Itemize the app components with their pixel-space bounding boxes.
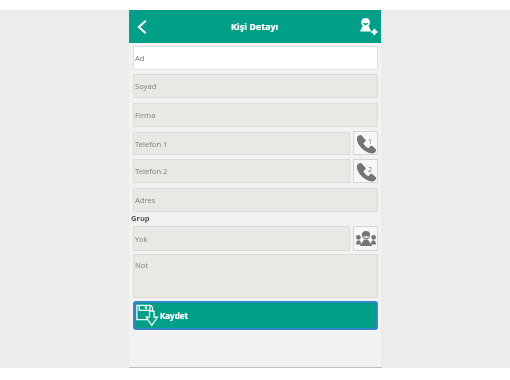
button[interactable]: Add contact — [353, 10, 383, 43]
button[interactable]: Kaydet — [135, 303, 376, 328]
staticText: Ad — [135, 53, 145, 63]
button[interactable]: Yok — [133, 226, 350, 251]
staticText: Firma — [135, 110, 156, 120]
button[interactable]: Back — [128, 10, 156, 43]
button[interactable]: Soyad — [133, 74, 378, 98]
staticText: 2 — [368, 165, 373, 175]
staticText: Telefon 2 — [135, 166, 168, 176]
staticText: 1 — [368, 137, 373, 147]
button[interactable]: Adres — [133, 188, 378, 212]
button[interactable]: Firma — [133, 103, 378, 127]
staticText: Yok — [135, 234, 148, 244]
staticText: Adres — [135, 195, 156, 205]
button[interactable]: group — [353, 226, 378, 251]
button[interactable]: Ad — [133, 46, 378, 70]
staticText: Grup — [131, 213, 150, 223]
button[interactable]: Telefon 2 — [133, 159, 350, 183]
staticText: Not — [135, 260, 149, 270]
button[interactable]: Telefon 1 — [133, 132, 350, 155]
staticText: Soyad — [135, 81, 157, 91]
staticText: Kişi Detayı — [231, 20, 279, 32]
button[interactable]: phone2 — [353, 159, 378, 183]
button[interactable]: Grup — [131, 212, 150, 224]
staticText: Kaydet — [160, 310, 188, 321]
staticText: Telefon 1 — [135, 139, 168, 149]
button[interactable]: phone1 — [353, 131, 378, 155]
button[interactable]: Not — [133, 254, 378, 298]
